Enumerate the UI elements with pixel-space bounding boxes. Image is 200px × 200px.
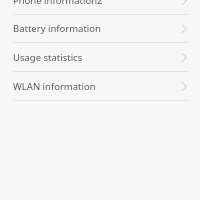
staticText: Usage statistics bbox=[13, 51, 83, 64]
button[interactable]: Battery information bbox=[0, 15, 200, 42]
button[interactable]: Phone information2 bbox=[0, 0, 200, 14]
button[interactable]: WLAN information bbox=[0, 72, 200, 100]
staticText: WLAN information bbox=[13, 80, 96, 93]
button[interactable]: Usage statistics bbox=[0, 43, 200, 71]
staticText: Battery information bbox=[13, 22, 101, 35]
staticText: Phone information2 bbox=[13, 0, 103, 7]
